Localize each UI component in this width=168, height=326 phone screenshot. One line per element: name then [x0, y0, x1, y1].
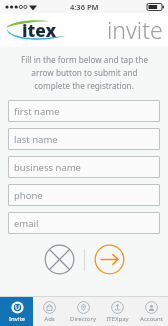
staticText: arrow button to submit and [31, 67, 138, 78]
button[interactable]: last name [8, 128, 160, 150]
staticText: ITEXpay [106, 315, 129, 323]
button[interactable]: Cancel [44, 244, 75, 275]
staticText: business name [14, 161, 81, 174]
staticText: Account [140, 315, 163, 323]
button[interactable]: Invite [0, 297, 33, 326]
staticText: 4:36 PM [70, 2, 99, 12]
staticText: Invite [9, 315, 25, 323]
button[interactable]: Ads [33, 297, 66, 326]
button[interactable]: Directory [66, 297, 100, 326]
staticText: invite [107, 14, 163, 45]
staticText: first name [14, 105, 60, 118]
staticText: complete the registration. [34, 80, 134, 91]
staticText: itex [22, 19, 57, 42]
button[interactable]: business name [8, 156, 160, 178]
staticText: last name [14, 133, 58, 146]
staticText: phone [14, 189, 43, 202]
staticText: email [14, 217, 39, 230]
button[interactable]: first name [8, 100, 160, 122]
button[interactable]: Account [134, 297, 168, 326]
button[interactable]: ITEXpay [100, 297, 134, 326]
staticText: Directory [70, 315, 96, 323]
button[interactable]: Submit [94, 244, 125, 275]
button[interactable]: phone [8, 184, 160, 206]
button[interactable]: email [8, 212, 160, 234]
staticText: Fill in the form below and tap the [21, 54, 148, 65]
staticText: Ads [44, 315, 55, 323]
